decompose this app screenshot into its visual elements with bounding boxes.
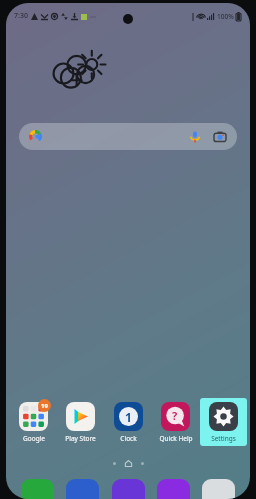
staticText: 19: [41, 402, 48, 410]
staticText: Google: [23, 434, 45, 443]
staticText: Quick Help: [159, 434, 193, 443]
button[interactable]: 1: [105, 398, 152, 446]
staticText: 100%: [217, 12, 234, 21]
button[interactable]: Settings: [200, 398, 247, 446]
button[interactable]: Google Lens: [214, 131, 226, 143]
staticText: Clock: [120, 434, 137, 443]
button[interactable]: Play Store: [57, 398, 104, 446]
staticText: ?: [172, 408, 178, 423]
staticText: 7:30: [14, 11, 28, 21]
staticText: 1: [125, 409, 132, 425]
button[interactable]: Voice search: [189, 131, 201, 143]
button[interactable]: 19: [10, 398, 57, 446]
staticText: Settings: [211, 434, 236, 443]
button[interactable]: Voice search: [19, 123, 237, 150]
staticText: Play Store: [65, 434, 96, 443]
button[interactable]: ?: [152, 398, 199, 446]
button[interactable]: Weather: [54, 51, 108, 93]
